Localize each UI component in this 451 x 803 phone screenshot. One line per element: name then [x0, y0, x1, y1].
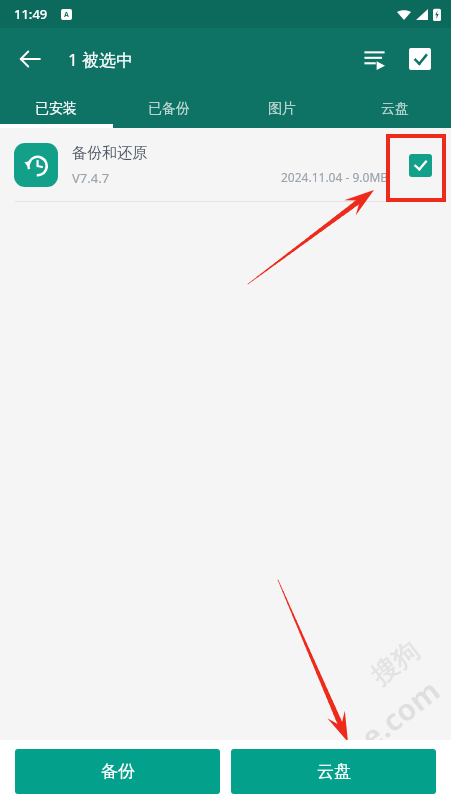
button[interactable]: 已安装: [0, 90, 112, 128]
button[interactable]: 备份: [15, 749, 220, 794]
staticText: 备份: [101, 761, 135, 782]
staticText: 已备份: [148, 100, 190, 118]
button[interactable]: 已备份: [112, 90, 225, 128]
staticText: 图片: [268, 100, 296, 118]
staticText: 云盘: [317, 761, 351, 782]
staticText: 云盘: [381, 100, 409, 118]
button[interactable]: Sort: [351, 36, 397, 82]
button[interactable]: 图片: [225, 90, 338, 128]
staticText: 搜狗: [364, 634, 426, 692]
staticText: 已安装: [35, 100, 77, 118]
staticText: 11:49: [14, 5, 48, 23]
button[interactable]: 云盘: [231, 749, 436, 794]
button[interactable]: Selected: [389, 128, 451, 202]
button[interactable]: Select all: [397, 36, 443, 82]
button[interactable]: 备份和还原: [0, 128, 451, 202]
button[interactable]: 云盘: [338, 90, 451, 128]
staticText: V7.4.7: [72, 169, 110, 187]
staticText: 2024.11.04 - 9.0MB: [281, 169, 389, 185]
staticText: 1 被选中: [68, 48, 134, 71]
staticText: e.com: [352, 670, 448, 757]
button[interactable]: Back: [6, 35, 54, 83]
staticText: 备份和还原: [72, 144, 147, 163]
staticText: A: [64, 10, 69, 20]
